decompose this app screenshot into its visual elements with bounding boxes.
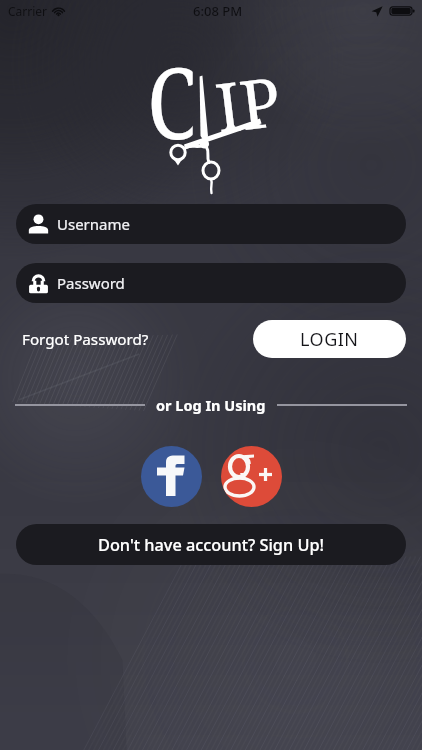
button[interactable]: Password (16, 263, 406, 303)
staticText: Username (57, 214, 130, 234)
staticText: Forgot Password? (22, 329, 149, 350)
button[interactable]: Don't have account? Sign Up! (16, 524, 406, 565)
button[interactable]: LOGIN (253, 320, 406, 358)
staticText: 6:08 PM (193, 2, 243, 20)
staticText: LOGIN (300, 327, 359, 352)
staticText: IP (210, 53, 285, 153)
staticText: C (147, 34, 193, 141)
button[interactable]: Forgot Password? (16, 321, 149, 358)
staticText: Don't have account? Sign Up! (98, 534, 324, 556)
staticText: Password (57, 273, 125, 293)
staticText: or Log In Using (156, 395, 266, 415)
button[interactable]: Log in with Facebook (141, 446, 202, 507)
staticText: Carrier (8, 3, 48, 19)
button[interactable]: Log in with Google Plus (221, 446, 282, 507)
button[interactable]: Username (16, 204, 406, 244)
